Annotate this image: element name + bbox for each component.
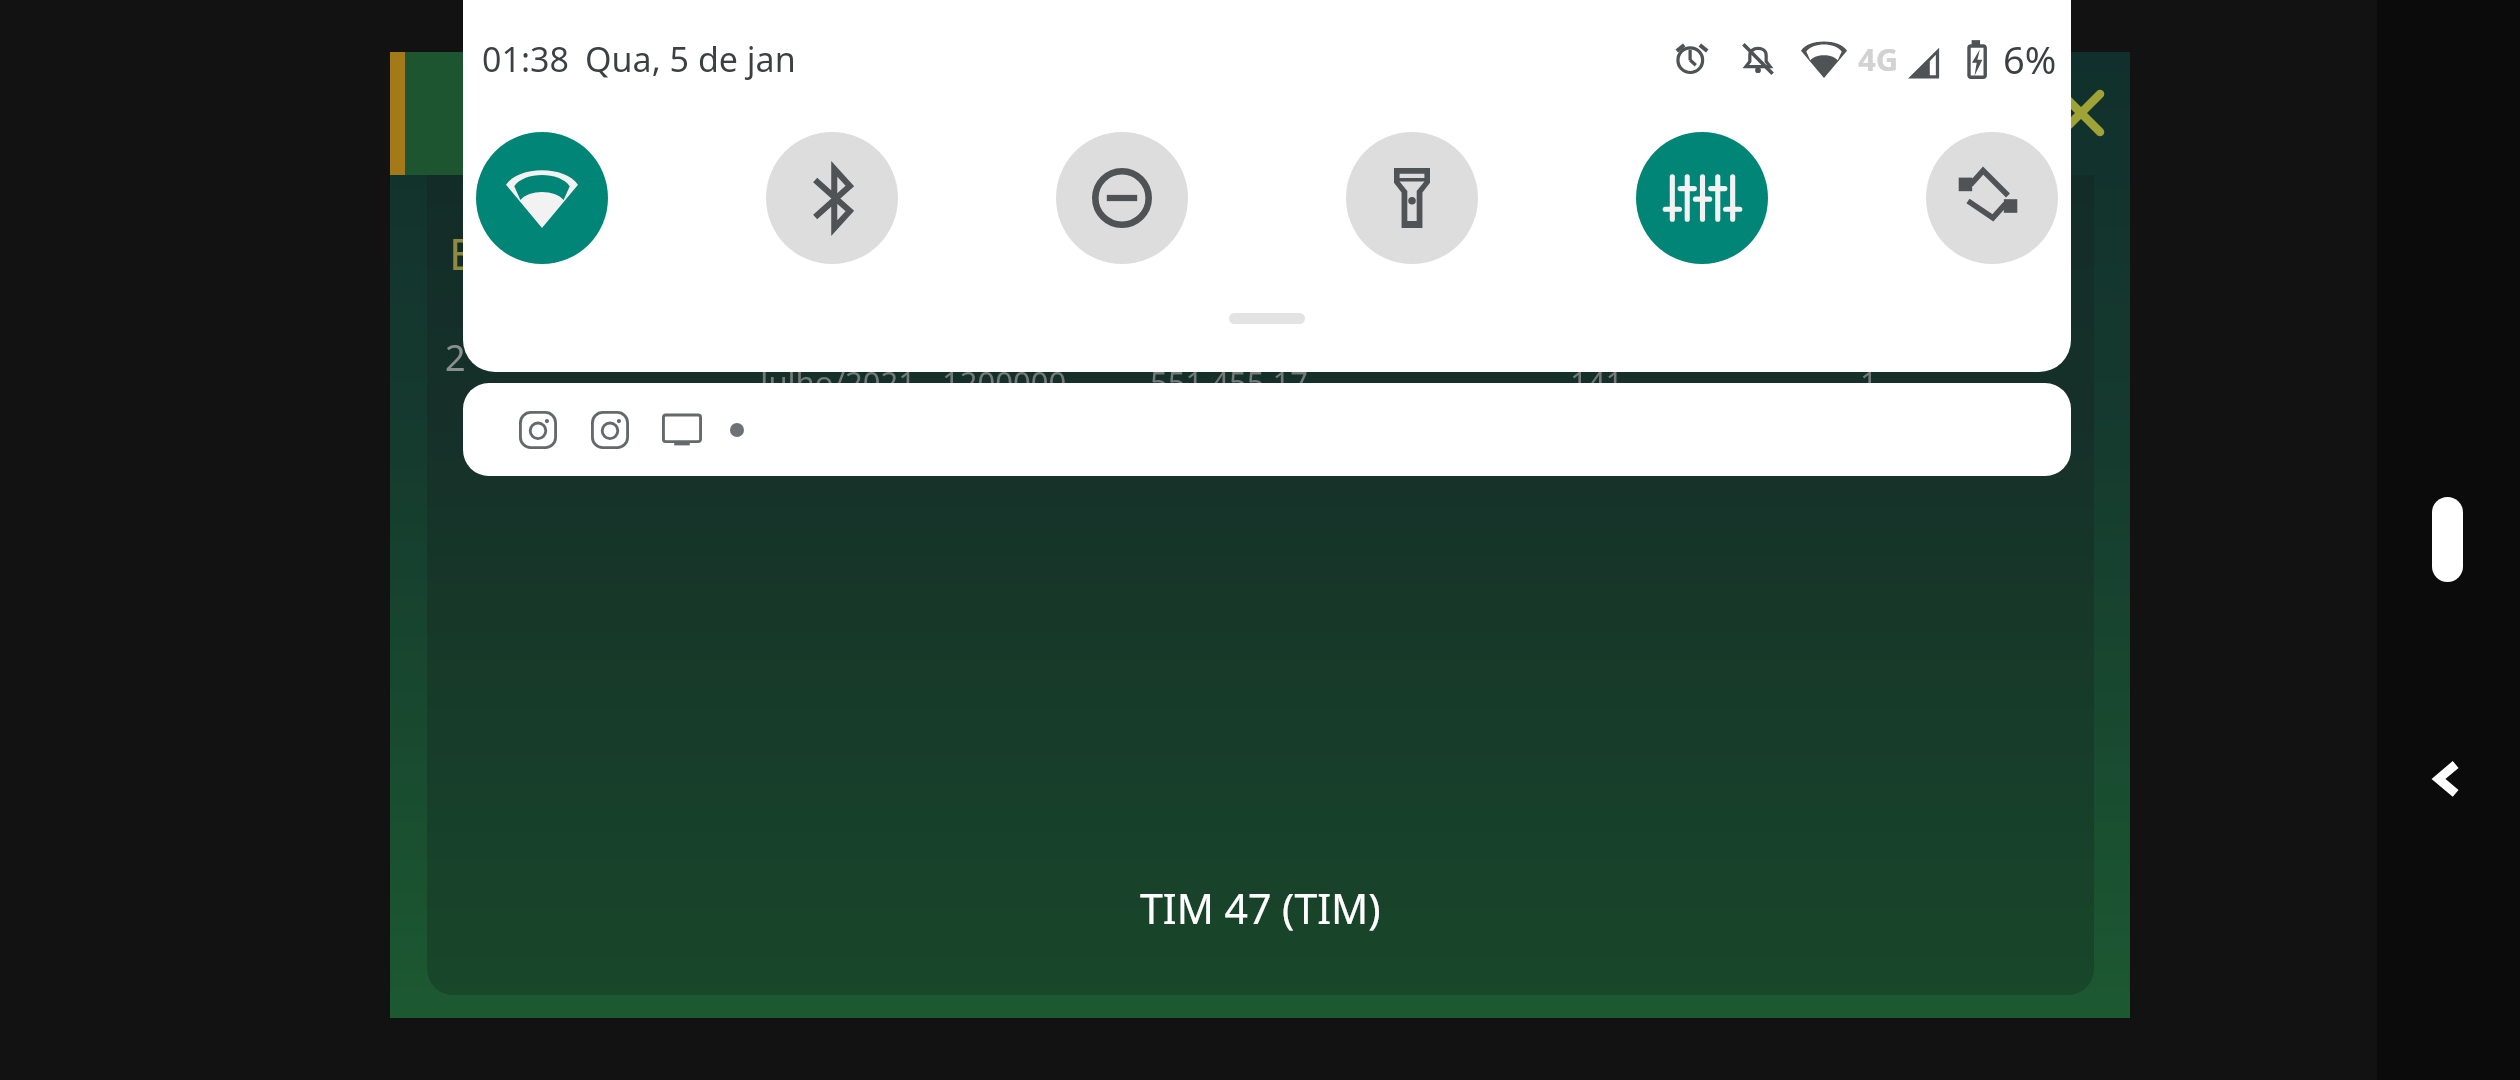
staticText: Julho/2021 - 1200000 [760, 361, 1067, 403]
button[interactable]: Wi-Fi [475, 128, 765, 268]
button[interactable]: Auto rotate [1925, 128, 2071, 268]
button[interactable]: Home [2432, 497, 2463, 582]
button[interactable]: Close [2053, 85, 2109, 141]
staticText: 2 [445, 333, 466, 382]
button[interactable]: Back [2419, 739, 2499, 819]
staticText: 551 455 17 [1150, 361, 1308, 403]
staticText: 141 [1570, 361, 1624, 403]
button[interactable]: Bluetooth [765, 128, 1055, 268]
staticText: Extrato [449, 223, 598, 283]
staticText: TIM 47 (TIM) [1140, 880, 1381, 936]
button[interactable]: Equaliser [1635, 128, 1925, 268]
button[interactable]: Expand quick settings [1229, 313, 1305, 324]
button[interactable]: Do not disturb [1055, 128, 1345, 268]
staticText: 6% [2003, 33, 2057, 85]
staticText: 1 [1860, 361, 1878, 403]
staticText: 4G [1858, 38, 1899, 80]
staticText: 01:38 [482, 36, 569, 82]
button[interactable]: Flashlight [1345, 128, 1635, 268]
staticText: Qua, 5 de jan [585, 36, 796, 82]
